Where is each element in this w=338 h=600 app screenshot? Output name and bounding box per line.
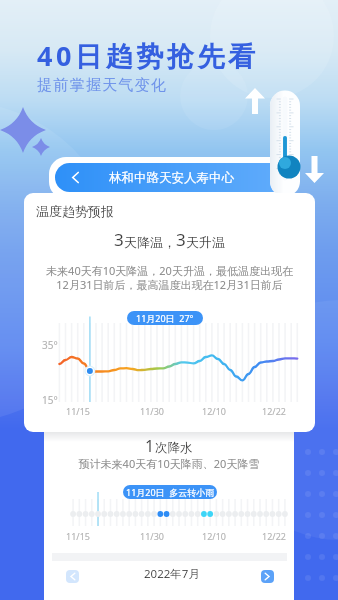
staticText: 11/15 — [66, 530, 90, 542]
staticText: 提前掌握天气变化 — [37, 76, 168, 95]
staticText: 1 — [145, 435, 155, 457]
staticText: 35° — [42, 338, 58, 352]
staticText: 11/30 — [140, 405, 164, 417]
staticText: 林和中路天安人寿中心 — [109, 170, 234, 186]
staticText: 3 — [114, 228, 124, 251]
staticText: 11/30 — [140, 530, 164, 542]
staticText: 3 — [176, 228, 186, 251]
button[interactable]: Next month — [261, 570, 274, 583]
button[interactable]: Previous month — [66, 570, 79, 583]
staticText: 15° — [42, 393, 58, 407]
button[interactable]: 林和中路天安人寿中心 — [55, 163, 287, 192]
staticText: 11/15 — [66, 405, 90, 417]
staticText: 12/22 — [262, 530, 286, 542]
staticText: 12/10 — [202, 405, 226, 417]
staticText: 11月20日 多云转小雨 — [126, 486, 215, 498]
staticText: 预计未来40天有10天降雨、20天降雪 — [44, 456, 294, 471]
staticText: 天降温， — [124, 234, 176, 250]
staticText: 11月20日 27° — [136, 312, 194, 324]
staticText: 12/22 — [262, 405, 286, 417]
staticText: 温度趋势预报 — [36, 203, 114, 219]
staticText: 天升温 — [186, 234, 225, 250]
staticText: 未来40天有10天降温，20天升温，最低温度出现在 12月31日前后，最高温度出… — [24, 263, 315, 293]
staticText: 次降水 — [155, 440, 193, 456]
staticText: 12/10 — [202, 530, 226, 542]
staticText: 2022年7月 — [144, 566, 200, 582]
staticText: 40日趋势抢先看 — [37, 37, 259, 74]
